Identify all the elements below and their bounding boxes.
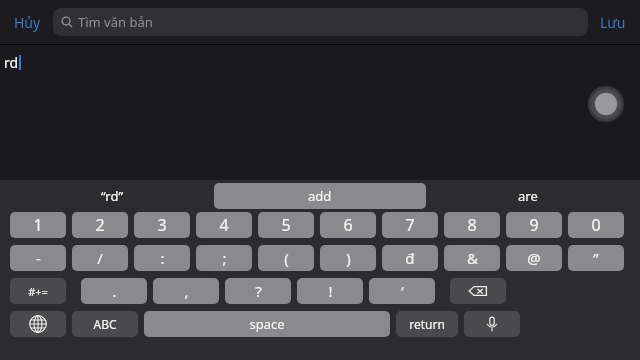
staticText: 7 (405, 214, 415, 236)
button[interactable]: ’ (369, 278, 435, 304)
staticText: space (249, 315, 285, 333)
button[interactable]: đ (382, 245, 438, 271)
button[interactable]: 6 (320, 212, 376, 238)
staticText: “rd” (101, 187, 124, 205)
button[interactable]: Lưu (596, 9, 630, 36)
button[interactable]: Dictation (464, 311, 520, 337)
button[interactable]: 4 (196, 212, 252, 238)
button[interactable]: / (72, 245, 128, 271)
button[interactable]: Backspace (450, 278, 506, 304)
button[interactable]: ) (320, 245, 376, 271)
button[interactable]: Record (588, 86, 624, 122)
button[interactable]: return (396, 311, 458, 337)
button[interactable]: ABC (72, 311, 138, 337)
staticText: . (112, 281, 117, 301)
staticText: are (518, 187, 538, 205)
button[interactable]: @ (506, 245, 562, 271)
button[interactable]: ? (225, 278, 291, 304)
button[interactable]: ” (568, 245, 624, 271)
button[interactable]: are (426, 180, 630, 212)
staticText: add (308, 187, 332, 205)
staticText: 9 (529, 214, 539, 236)
button[interactable]: - (10, 245, 66, 271)
staticText: 2 (95, 214, 105, 236)
staticText: & (467, 248, 478, 268)
button[interactable]: Change keyboard (10, 311, 66, 337)
button[interactable]: Tìm văn bản (53, 8, 588, 36)
button[interactable]: 5 (258, 212, 314, 238)
button[interactable]: : (134, 245, 190, 271)
staticText: ) (346, 248, 351, 268)
staticText: ( (284, 248, 289, 268)
button[interactable]: ! (297, 278, 363, 304)
staticText: đ (405, 248, 415, 268)
staticText: 0 (591, 214, 601, 236)
button[interactable]: 8 (444, 212, 500, 238)
button[interactable]: 9 (506, 212, 562, 238)
staticText: - (36, 248, 41, 268)
staticText: 3 (157, 214, 167, 236)
staticText: @ (527, 248, 541, 268)
staticText: , (184, 281, 189, 301)
staticText: / (97, 248, 103, 268)
staticText: ; (222, 248, 227, 268)
staticText: Hủy (14, 13, 41, 32)
button[interactable]: #+= (10, 278, 66, 304)
button[interactable]: & (444, 245, 500, 271)
staticText: 4 (219, 214, 229, 236)
staticText: ! (328, 281, 333, 301)
staticText: return (409, 316, 445, 332)
button[interactable]: ( (258, 245, 314, 271)
button[interactable]: 7 (382, 212, 438, 238)
button[interactable]: ; (196, 245, 252, 271)
button[interactable]: . (81, 278, 147, 304)
staticText: 5 (281, 214, 291, 236)
button[interactable]: space (144, 311, 390, 337)
button[interactable]: 1 (10, 212, 66, 238)
staticText: Lưu (600, 13, 626, 32)
button[interactable]: Hủy (10, 9, 45, 36)
button[interactable]: 0 (568, 212, 624, 238)
staticText: 8 (467, 214, 477, 236)
button[interactable]: 3 (134, 212, 190, 238)
staticText: #+= (28, 284, 48, 299)
staticText: ? (255, 281, 262, 301)
staticText: 6 (343, 214, 353, 236)
button[interactable]: “rd” (10, 180, 214, 212)
button[interactable]: 2 (72, 212, 128, 238)
button[interactable]: add (214, 183, 426, 209)
staticText: 1 (33, 214, 43, 236)
staticText: ’ (401, 281, 404, 301)
button[interactable]: , (153, 278, 219, 304)
staticText: : (160, 248, 165, 268)
staticText: Tìm văn bản (78, 13, 153, 31)
staticText: ” (593, 248, 599, 268)
staticText: rd (4, 53, 19, 72)
staticText: ABC (93, 316, 117, 332)
